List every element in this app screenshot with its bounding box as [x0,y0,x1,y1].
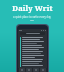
button[interactable]: Search entries [20,32,45,35]
button[interactable]: Daily Writ [0,3,64,13]
staticText: a quiet place to write every day [13,15,51,19]
button[interactable]: Saved [33,68,39,72]
button[interactable]: More [40,68,46,72]
button[interactable]: Today [26,68,32,72]
staticText: Daily Writ [12,3,53,13]
button[interactable]: Write [19,68,25,72]
